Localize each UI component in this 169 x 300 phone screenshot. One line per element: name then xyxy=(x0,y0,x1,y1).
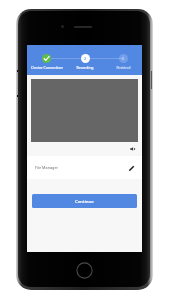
button[interactable]: 3 xyxy=(104,45,142,75)
button[interactable]: 2 xyxy=(66,45,104,75)
button[interactable]: Edit xyxy=(128,164,136,172)
staticText: 2 xyxy=(84,56,87,61)
staticText: 3 xyxy=(122,56,125,61)
button[interactable]: File Manager xyxy=(27,156,142,179)
staticText: Device Connection xyxy=(31,65,63,70)
button[interactable]: Device Connection xyxy=(27,45,66,75)
button[interactable]: Sound xyxy=(130,147,135,151)
staticText: Recording xyxy=(76,65,94,70)
button[interactable]: Continue xyxy=(32,194,137,208)
staticText: Finished xyxy=(116,65,131,70)
staticText: Continue xyxy=(75,198,94,204)
staticText: File Manager xyxy=(35,165,59,170)
